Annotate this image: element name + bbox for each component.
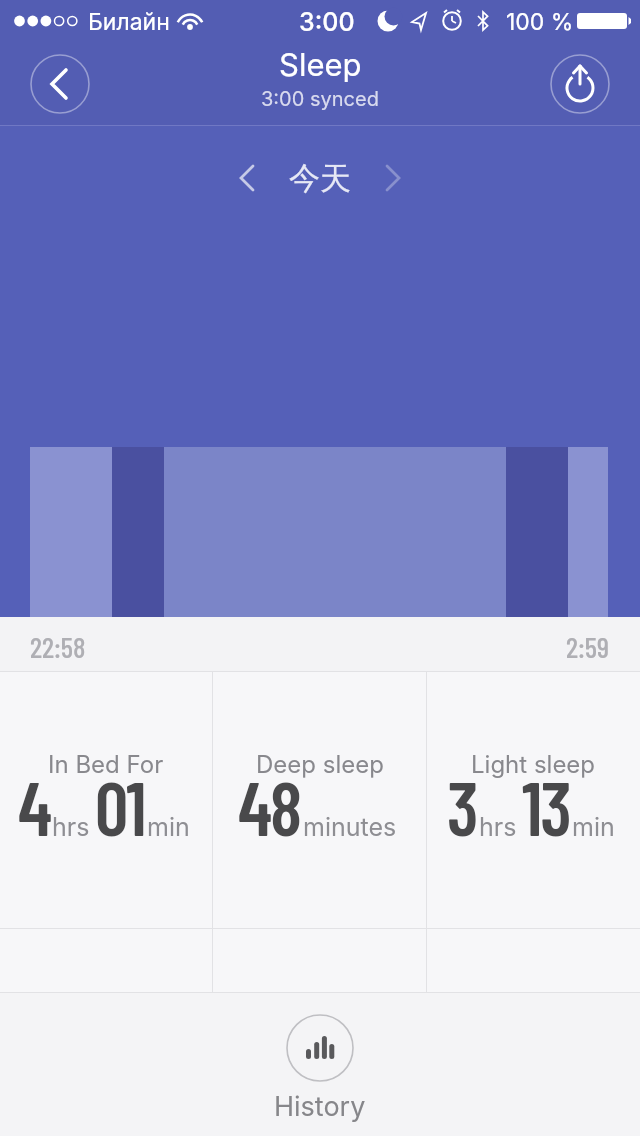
button[interactable]: In Bed For: [0, 672, 212, 928]
button[interactable]: History: [274, 1015, 366, 1123]
staticText: hrs: [479, 812, 517, 842]
staticText: Deep sleep: [256, 750, 384, 779]
staticText: Light sleep: [471, 750, 596, 779]
staticText: min: [147, 812, 190, 842]
staticText: 3:00 synced: [261, 87, 379, 111]
staticText: 2:59: [566, 629, 610, 664]
button[interactable]: [371, 156, 415, 200]
staticText: 4: [18, 762, 50, 851]
staticText: History: [274, 1090, 366, 1123]
staticText: 01: [95, 762, 145, 851]
button[interactable]: Light sleep: [427, 672, 640, 928]
staticText: hrs: [52, 812, 90, 842]
staticText: 13: [522, 762, 570, 851]
staticText: minutes: [303, 812, 397, 842]
staticText: Sleep: [279, 46, 362, 84]
staticText: 今天: [289, 159, 351, 198]
staticText: 22:58: [30, 629, 86, 664]
staticText: Билайн: [88, 8, 170, 36]
button[interactable]: [30, 54, 90, 114]
staticText: 48: [238, 762, 301, 851]
staticText: 3:00: [299, 7, 355, 37]
button[interactable]: Deep sleep: [213, 672, 426, 928]
staticText: 100 %: [506, 8, 574, 36]
button[interactable]: [550, 54, 610, 114]
staticText: In Bed For: [48, 750, 164, 779]
staticText: 3: [447, 762, 477, 851]
staticText: min: [572, 812, 615, 842]
button[interactable]: [225, 156, 269, 200]
